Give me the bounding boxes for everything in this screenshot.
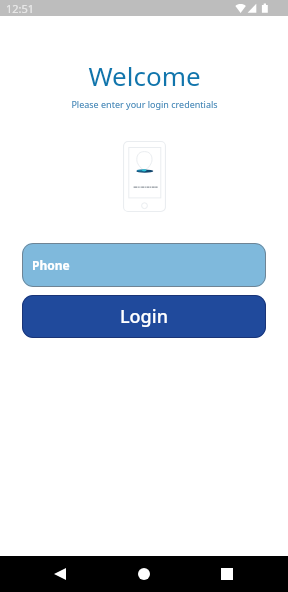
button[interactable]: Login <box>22 295 266 338</box>
button[interactable]: Back <box>40 556 80 592</box>
staticText: Phone <box>32 257 70 273</box>
staticText: Please enter your login credentials <box>71 98 218 110</box>
button[interactable]: Home <box>124 556 164 592</box>
button[interactable]: Phone <box>22 243 266 287</box>
staticText: Login <box>120 304 168 329</box>
button[interactable]: Recent apps <box>207 556 247 592</box>
staticText: Welcome <box>88 58 201 93</box>
staticText: 12:51 <box>6 1 35 16</box>
